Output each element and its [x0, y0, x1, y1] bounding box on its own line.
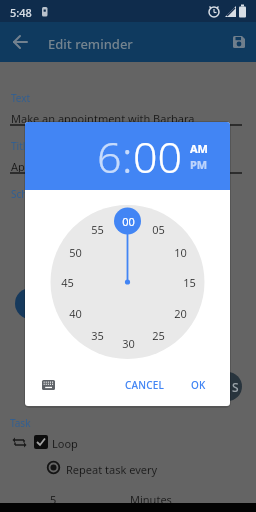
button[interactable]: [42, 380, 55, 390]
staticText: 10: [174, 245, 187, 259]
staticText: 00: [122, 214, 135, 228]
staticText: Text: [11, 91, 31, 105]
button[interactable]: 30: [117, 336, 139, 350]
button[interactable]: 15: [178, 275, 200, 289]
button[interactable]: 20: [169, 306, 191, 320]
staticText: Minutes: [130, 492, 172, 507]
button[interactable]: [15, 288, 46, 319]
button[interactable]: 25: [147, 328, 169, 342]
staticText: Schedule: [11, 187, 54, 201]
staticText: 20: [174, 306, 187, 320]
staticText: 25: [152, 328, 165, 342]
staticText: Appointment: [11, 159, 80, 174]
button[interactable]: AM: [190, 141, 208, 156]
button[interactable]: PM: [190, 157, 208, 172]
button[interactable]: OK: [183, 375, 213, 395]
staticText: Make an appointment with Barbara: [11, 111, 195, 126]
staticText: 05: [152, 222, 165, 236]
staticText: 6: [97, 127, 122, 186]
staticText: 15: [183, 275, 196, 289]
staticText: 5:48: [10, 5, 32, 20]
button[interactable]: 55: [86, 222, 108, 236]
staticText: 00: [133, 127, 183, 186]
staticText: 30: [122, 336, 135, 350]
button[interactable]: 45: [56, 275, 78, 289]
staticText: OK: [191, 378, 206, 392]
button[interactable]: 40: [64, 306, 86, 320]
staticText: Edit reminder: [48, 35, 133, 53]
button[interactable]: [233, 36, 245, 48]
button[interactable]: [47, 461, 60, 474]
staticText: 40: [69, 306, 82, 320]
staticText: Task: [10, 416, 31, 430]
button[interactable]: 35: [86, 328, 108, 342]
staticText: S: [232, 379, 239, 395]
staticText: 45: [61, 275, 74, 289]
staticText: 55: [91, 222, 104, 236]
staticText: :: [122, 127, 133, 186]
button[interactable]: 05: [147, 222, 169, 236]
staticText: Loop: [52, 436, 78, 451]
staticText: 50: [69, 245, 82, 259]
button[interactable]: 50: [64, 245, 86, 259]
staticText: Title: [11, 139, 31, 153]
button[interactable]: 00: [117, 214, 139, 228]
staticText: 5: [50, 492, 57, 507]
staticText: 35: [91, 328, 104, 342]
button[interactable]: [34, 435, 48, 449]
button[interactable]: CANCEL: [124, 375, 166, 395]
staticText: CANCEL: [125, 378, 165, 392]
button[interactable]: 10: [169, 245, 191, 259]
button[interactable]: S: [213, 372, 242, 401]
staticText: Repeat task every: [66, 462, 158, 477]
button[interactable]: [14, 36, 28, 48]
